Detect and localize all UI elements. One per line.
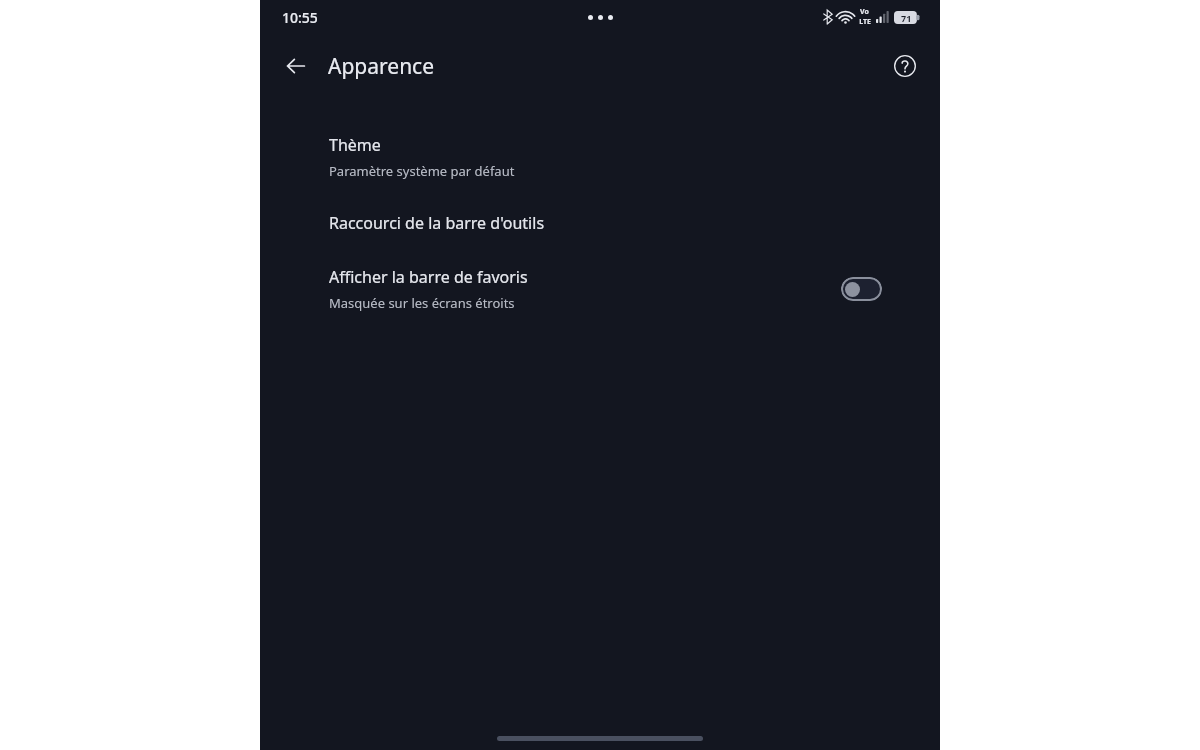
staticText: 10:55	[282, 8, 318, 27]
button[interactable]: Retour	[282, 52, 310, 80]
staticText: Raccourci de la barre d'outils	[329, 212, 545, 234]
staticText: Masquée sur les écrans étroits	[329, 294, 515, 312]
staticText: Apparence	[328, 52, 435, 81]
staticText: 71	[901, 12, 912, 24]
staticText: Afficher la barre de favoris	[329, 266, 528, 288]
staticText: LTE	[859, 17, 871, 27]
button[interactable]: Afficher la barre de favoris	[841, 277, 882, 301]
button[interactable]: Aide	[888, 49, 922, 83]
button[interactable]: Raccourci de la barre d'outils	[260, 195, 940, 250]
button[interactable]: Afficher la barre de favoris	[260, 250, 940, 327]
button[interactable]: Thème	[260, 118, 940, 195]
staticText: Thème	[329, 134, 381, 156]
staticText: Paramètre système par défaut	[329, 162, 515, 180]
staticText: Vo	[860, 7, 869, 17]
